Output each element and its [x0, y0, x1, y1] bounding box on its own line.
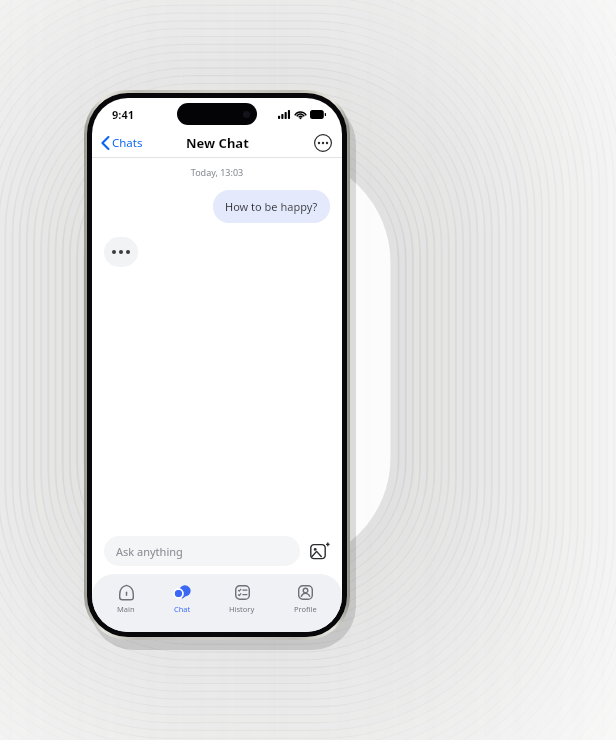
staticText: New Chat: [186, 134, 249, 152]
button[interactable]: More options: [314, 134, 332, 152]
button[interactable]: Chat: [160, 582, 205, 616]
staticText: Today, 13:03: [92, 166, 342, 178]
staticText: Profile: [294, 604, 317, 614]
button[interactable]: Ask anything: [104, 536, 300, 566]
staticText: Chats: [112, 135, 143, 151]
staticText: Ask anything: [116, 544, 183, 559]
staticText: How to be happy?: [225, 199, 318, 214]
button[interactable]: History: [215, 582, 269, 616]
button[interactable]: Main: [103, 582, 149, 616]
button[interactable]: [104, 237, 138, 267]
staticText: 9:41: [112, 107, 134, 122]
staticText: Chat: [174, 604, 191, 614]
button[interactable]: Chats: [92, 131, 153, 155]
button[interactable]: Add photo: [310, 541, 330, 561]
staticText: Main: [117, 604, 135, 614]
button[interactable]: Profile: [280, 582, 331, 616]
staticText: History: [229, 604, 255, 614]
button[interactable]: How to be happy?: [213, 190, 330, 223]
